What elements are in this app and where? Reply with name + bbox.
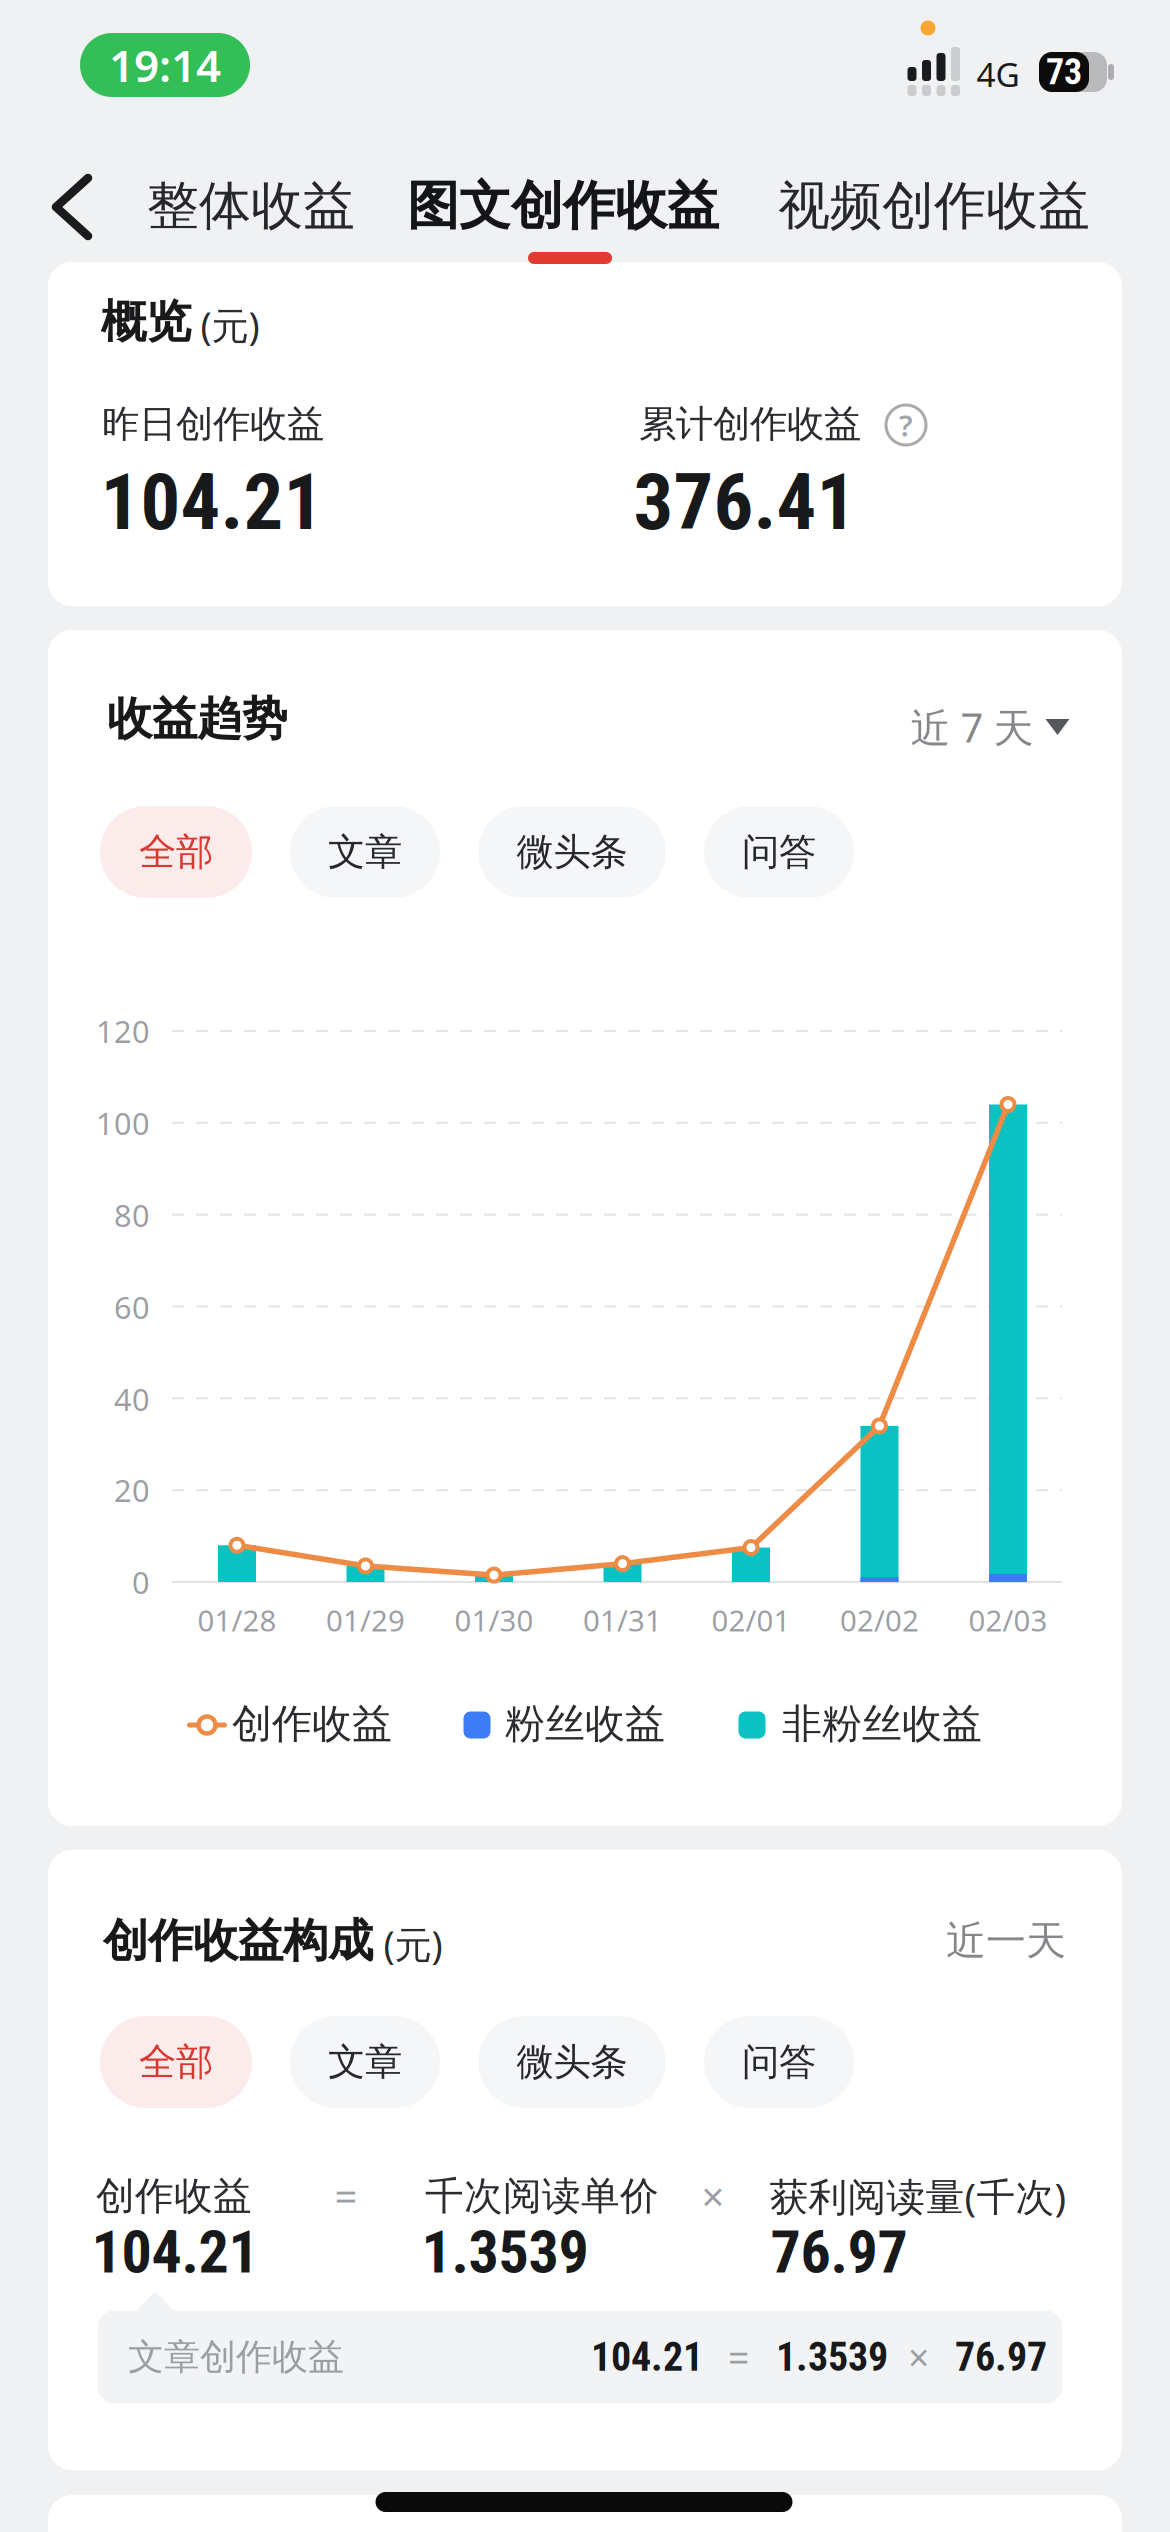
staticText: 问答: [742, 2039, 816, 2085]
button[interactable]: 问答: [704, 806, 854, 898]
staticText: 创作收益构成: [103, 1913, 373, 1969]
button[interactable]: 图文创作收益: [407, 174, 719, 238]
staticText: 创作收益: [232, 1699, 392, 1748]
staticText: 120: [96, 1011, 150, 1051]
staticText: 01/31: [583, 1600, 662, 1639]
staticText: 02/02: [840, 1600, 919, 1639]
staticText: 02/01: [711, 1600, 790, 1639]
staticText: 微头条: [516, 829, 627, 875]
staticText: 文章: [328, 829, 402, 875]
staticText: ×: [701, 2169, 724, 2222]
button[interactable]: 返回通话: [80, 33, 250, 97]
staticText: 文章: [328, 2039, 402, 2085]
button[interactable]: 问答: [704, 2016, 854, 2108]
staticText: 73: [1046, 51, 1082, 93]
staticText: 1.3539: [421, 2217, 588, 2287]
staticText: 千次阅读单价: [425, 2172, 659, 2220]
button[interactable]: 全部: [100, 806, 252, 898]
staticText: 概览: [101, 294, 191, 350]
button[interactable]: 文章: [290, 2016, 440, 2108]
staticText: 02/03: [968, 1600, 1047, 1639]
staticText: 104.21: [591, 2334, 703, 2380]
staticText: 全部: [139, 2039, 213, 2085]
staticText: 近一天: [946, 1916, 1066, 1965]
staticText: (元): [200, 300, 259, 350]
staticText: 1.3539: [776, 2334, 888, 2380]
staticText: 76.97: [955, 2334, 1047, 2380]
button[interactable]: 选择时间范围: [910, 700, 1069, 753]
staticText: 问答: [742, 829, 816, 875]
staticText: 19:14: [109, 36, 221, 94]
button[interactable]: 文章: [290, 806, 440, 898]
button[interactable]: 返回: [32, 167, 112, 247]
button[interactable]: 微头条: [478, 806, 666, 898]
button[interactable]: 文章创作收益: [98, 2310, 1062, 2403]
staticText: 20: [114, 1470, 150, 1510]
staticText: 80: [114, 1195, 150, 1235]
staticText: 104.21: [91, 2217, 258, 2287]
button[interactable]: 累计创作收益说明: [884, 403, 928, 447]
staticText: 获利阅读量(千次): [769, 2170, 1066, 2222]
staticText: 非粉丝收益: [782, 1699, 982, 1748]
staticText: 376.41: [633, 456, 856, 548]
staticText: 粉丝收益: [505, 1699, 665, 1748]
staticText: 视频创作收益: [778, 174, 1090, 238]
staticText: ?: [899, 405, 913, 444]
staticText: 40: [114, 1379, 150, 1419]
staticText: 01/30: [454, 1600, 533, 1639]
staticText: =: [728, 2332, 749, 2382]
staticText: 0: [132, 1562, 150, 1602]
staticText: 76.97: [770, 2217, 907, 2287]
staticText: 01/29: [326, 1600, 405, 1639]
staticText: =: [334, 2169, 357, 2222]
staticText: 创作收益: [96, 2172, 252, 2220]
staticText: 文章创作收益: [128, 2335, 344, 2379]
staticText: ×: [908, 2332, 929, 2382]
staticText: 微头条: [516, 2039, 627, 2085]
staticText: 4G: [976, 52, 1019, 96]
staticText: (元): [383, 1919, 442, 1969]
staticText: 全部: [139, 829, 213, 875]
button[interactable]: 视频创作收益: [778, 174, 1090, 238]
button[interactable]: 微头条: [478, 2016, 666, 2108]
staticText: 整体收益: [147, 174, 355, 238]
staticText: 昨日创作收益: [102, 401, 324, 447]
staticText: 累计创作收益: [639, 401, 861, 447]
button[interactable]: 全部: [100, 2016, 252, 2108]
staticText: 图文创作收益: [407, 174, 719, 238]
staticText: 近 7 天: [910, 700, 1033, 753]
staticText: 100: [96, 1103, 150, 1143]
staticText: 60: [114, 1287, 150, 1327]
staticText: 收益趋势: [107, 691, 287, 747]
staticText: 104.21: [100, 456, 323, 548]
staticText: 01/28: [197, 1600, 276, 1639]
button[interactable]: 整体收益: [147, 174, 355, 238]
